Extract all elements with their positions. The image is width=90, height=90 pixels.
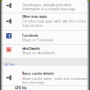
- staticText: text message: [22, 81, 44, 85]
- staticText: Other map apps: [22, 15, 47, 18]
- button[interactable]: Share on what3words: [2, 44, 88, 58]
- staticText: Share on what3words: [22, 51, 55, 55]
- staticText: what3words: [22, 47, 40, 51]
- staticText: map location: [22, 24, 43, 28]
- staticText: Share cache name, code and coordinates a…: [22, 77, 90, 81]
- button[interactable]: Share basic cache details: [2, 66, 88, 85]
- button[interactable]: Share on Facebook: [2, 30, 88, 44]
- button[interactable]: Other map apps: [2, 13, 88, 30]
- staticText: Let other map apps work with the current: [22, 20, 86, 23]
- staticText: Facebook: [22, 34, 38, 37]
- staticText: f: [8, 34, 10, 39]
- staticText: GPX file: [15, 86, 27, 90]
- staticText: DETAIL: [4, 63, 15, 66]
- button[interactable]: Share as message: [2, 0, 88, 13]
- staticText: Coordinates, altitude and other: [22, 3, 71, 7]
- button[interactable]: Share GPX file: [2, 85, 88, 90]
- staticText: Share on Facebook: [22, 39, 53, 42]
- staticText: information in a simple message: [22, 7, 75, 11]
- staticText: Basic cache details: [22, 72, 54, 75]
